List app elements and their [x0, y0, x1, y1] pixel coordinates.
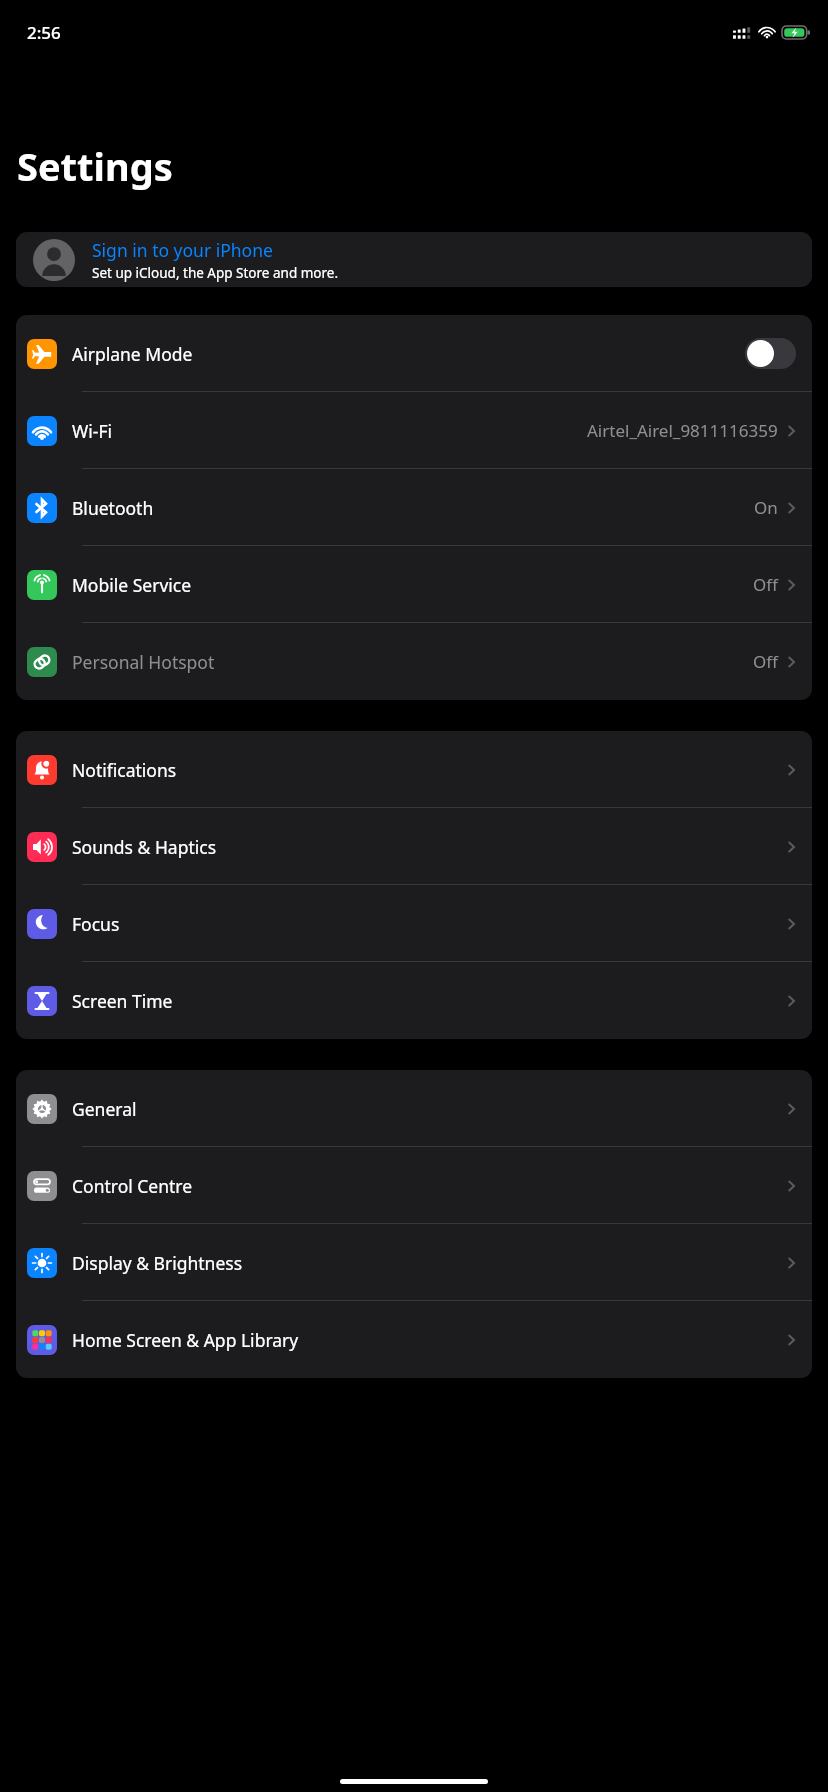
button[interactable]: Focus: [16, 885, 812, 962]
button[interactable]: Notifications: [16, 731, 812, 808]
staticText: Off: [753, 650, 778, 673]
staticText: Control Centre: [72, 1174, 193, 1198]
staticText: Home Screen & App Library: [72, 1328, 299, 1352]
button[interactable]: Screen Time: [16, 962, 812, 1039]
staticText: Mobile Service: [72, 573, 192, 597]
button[interactable]: Airplane Mode toggle: [745, 338, 796, 369]
staticText: 2:56: [27, 21, 61, 44]
staticText: General: [72, 1097, 137, 1121]
button[interactable]: Sign in to your iPhone: [16, 232, 812, 287]
staticText: Wi-Fi: [72, 419, 113, 443]
button[interactable]: Bluetooth: [16, 469, 812, 546]
staticText: Set up iCloud, the App Store and more.: [92, 264, 339, 282]
button[interactable]: Mobile Service: [16, 546, 812, 623]
button[interactable]: Sounds & Haptics: [16, 808, 812, 885]
staticText: Focus: [72, 912, 120, 936]
staticText: On: [754, 496, 778, 519]
staticText: Off: [753, 573, 778, 596]
staticText: Airplane Mode: [72, 342, 193, 366]
staticText: Bluetooth: [72, 496, 154, 520]
button[interactable]: Display & Brightness: [16, 1224, 812, 1301]
staticText: Display & Brightness: [72, 1251, 243, 1275]
staticText: Personal Hotspot: [72, 650, 215, 674]
button[interactable]: Personal Hotspot: [16, 623, 812, 700]
staticText: Sounds & Haptics: [72, 835, 217, 859]
staticText: Airtel_Airel_9811116359: [587, 419, 778, 442]
staticText: Screen Time: [72, 989, 173, 1013]
button[interactable]: Home Screen & App Library: [16, 1301, 812, 1378]
button[interactable]: Wi-Fi: [16, 392, 812, 469]
staticText: Notifications: [72, 758, 177, 782]
staticText: Sign in to your iPhone: [92, 238, 273, 262]
button[interactable]: General: [16, 1070, 812, 1147]
button[interactable]: Airplane Mode: [16, 315, 812, 392]
button[interactable]: Control Centre: [16, 1147, 812, 1224]
staticText: Settings: [17, 140, 173, 192]
